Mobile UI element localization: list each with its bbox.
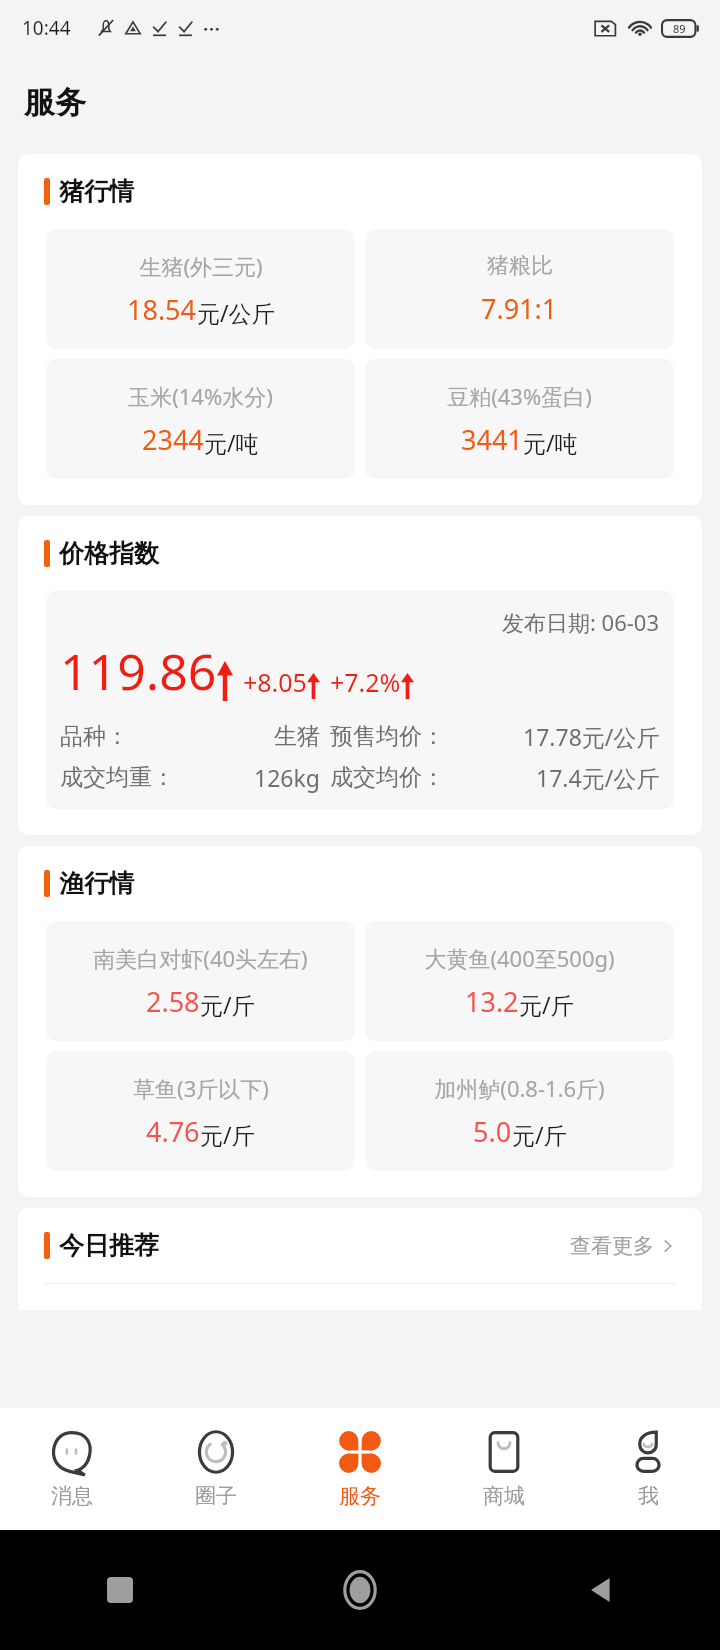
staticText: 4.76 [146, 1113, 200, 1150]
staticText: 126kg [254, 762, 320, 793]
staticText: 消息 [51, 1483, 93, 1509]
button[interactable]: Back [585, 1575, 615, 1605]
staticText: 元/斤 [519, 989, 574, 1020]
button[interactable]: 豆粕(43%蛋白) [365, 359, 674, 479]
button[interactable]: 圈子 [144, 1408, 288, 1530]
staticText: +7.2% [330, 665, 401, 699]
staticText: 查看更多 [570, 1233, 654, 1259]
button[interactable]: Home [340, 1570, 380, 1610]
button[interactable]: 南美白对虾(40头左右) [46, 921, 355, 1041]
button[interactable]: 生猪(外三元) [46, 229, 355, 349]
button[interactable]: 我 [576, 1408, 720, 1530]
staticText: 服务 [339, 1483, 381, 1509]
button[interactable]: 玉米(14%水分) [46, 359, 355, 479]
staticText: 今日推荐 [59, 1230, 159, 1261]
staticText: 发布日期: 06-03 [502, 607, 660, 637]
button[interactable]: Recents [107, 1577, 133, 1603]
staticText: 3441 [461, 421, 523, 458]
button[interactable]: 查看更多 [570, 1233, 676, 1259]
staticText: 5.0 [473, 1113, 512, 1150]
button[interactable]: 发布日期: 06-03 [46, 591, 674, 809]
staticText: 草鱼(3斤以下) [133, 1073, 269, 1103]
button[interactable]: 草鱼(3斤以下) [46, 1051, 355, 1171]
staticText: 2.58 [146, 983, 200, 1020]
staticText: 品种： [60, 722, 129, 751]
staticText: 13.2 [465, 983, 519, 1020]
staticText: 18.54 [127, 291, 197, 328]
staticText: 17.4元/公斤 [536, 762, 660, 793]
staticText: 10:44 [22, 15, 71, 41]
staticText: 成交均价： [330, 763, 445, 792]
staticText: 猪粮比 [487, 252, 553, 280]
staticText: 17.78元/公斤 [523, 721, 660, 752]
staticText: 猪行情 [59, 176, 134, 207]
staticText: 渔行情 [59, 868, 134, 899]
staticText: 成交均重： [60, 763, 175, 792]
staticText: 加州鲈(0.8-1.6斤) [434, 1073, 605, 1103]
staticText: 7.91:1 [481, 290, 558, 327]
staticText: 大黄鱼(400至500g) [424, 943, 615, 973]
staticText: 元/斤 [200, 989, 255, 1020]
button[interactable]: 消息 [0, 1408, 144, 1530]
staticText: 生猪(外三元) [139, 251, 263, 281]
staticText: 服务 [24, 83, 86, 122]
staticText: 玉米(14%水分) [128, 381, 273, 411]
button[interactable]: 加州鲈(0.8-1.6斤) [365, 1051, 674, 1171]
staticText: 119.86 [60, 637, 217, 705]
staticText: 元/吨 [523, 427, 578, 458]
staticText: 生猪 [274, 722, 320, 751]
staticText: 89 [673, 21, 686, 36]
button[interactable]: 猪粮比 [365, 229, 674, 349]
staticText: 豆粕(43%蛋白) [447, 381, 592, 411]
button[interactable]: 商城 [432, 1408, 576, 1530]
staticText: 圈子 [195, 1483, 237, 1509]
staticText: 元/斤 [200, 1119, 255, 1150]
button[interactable]: 大黄鱼(400至500g) [365, 921, 674, 1041]
staticText: 我 [638, 1483, 659, 1509]
staticText: 2344 [142, 421, 204, 458]
staticText: 价格指数 [59, 538, 159, 569]
staticText: 南美白对虾(40头左右) [93, 943, 308, 973]
staticText: +8.05 [243, 665, 307, 699]
staticText: 商城 [483, 1483, 525, 1509]
staticText: 元/公斤 [197, 297, 275, 328]
staticText: 预售均价： [330, 722, 445, 751]
staticText: 元/吨 [204, 427, 259, 458]
button[interactable]: 服务 [288, 1408, 432, 1530]
staticText: 元/斤 [512, 1119, 567, 1150]
